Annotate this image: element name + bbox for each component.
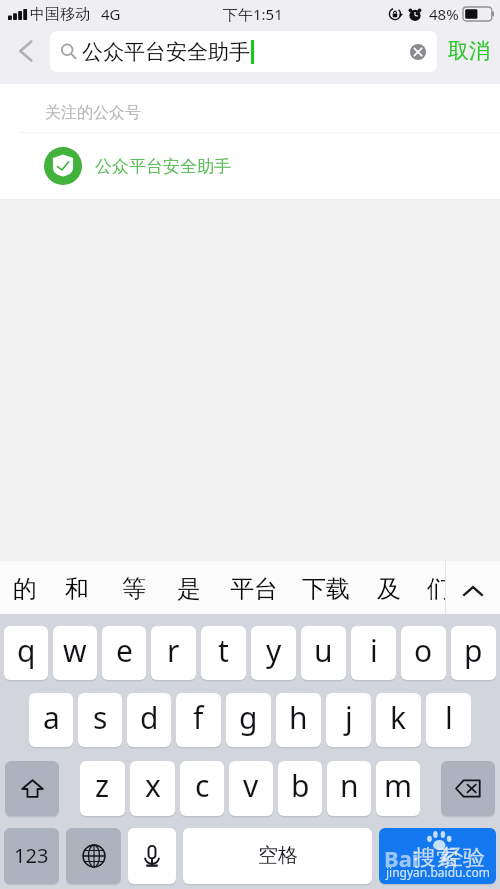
staticText: e <box>116 630 133 671</box>
button[interactable]: e <box>102 626 146 680</box>
staticText: i <box>370 630 378 671</box>
staticText: u <box>314 630 333 671</box>
staticText: 搜索 <box>414 844 458 872</box>
staticText: g <box>239 697 258 738</box>
button[interactable]: s <box>78 693 122 747</box>
staticText: k <box>390 697 407 738</box>
button[interactable]: b <box>278 761 322 816</box>
button[interactable]: 和 <box>65 561 89 614</box>
button[interactable]: h <box>276 693 321 747</box>
staticText: t <box>218 630 229 671</box>
button[interactable]: 们 <box>427 561 445 614</box>
staticText: b <box>291 765 310 806</box>
staticText: 经验 <box>441 844 485 872</box>
staticText: 公众平台安全助手 <box>82 39 250 65</box>
staticText: j <box>345 697 353 738</box>
button[interactable]: x <box>130 761 175 816</box>
button[interactable]: 取消 <box>437 23 500 79</box>
button[interactable]: Switch keyboard language <box>66 828 121 884</box>
button[interactable]: w <box>53 626 97 680</box>
button[interactable]: 等 <box>122 561 146 614</box>
button[interactable]: j <box>326 693 371 747</box>
button[interactable]: t <box>201 626 246 680</box>
staticText: r <box>167 630 180 671</box>
staticText: c <box>195 765 210 806</box>
staticText: 关注的公众号 <box>45 103 141 123</box>
staticText: f <box>193 697 204 738</box>
button[interactable]: Search <box>379 828 496 884</box>
staticText: 下载 <box>302 574 350 604</box>
button[interactable]: 空格 <box>183 828 372 884</box>
button[interactable]: m <box>376 761 420 816</box>
button[interactable]: 平台 <box>230 561 278 614</box>
staticText: 取消 <box>448 38 490 64</box>
button[interactable]: 公众平台安全助手 <box>0 133 500 199</box>
button[interactable]: k <box>376 693 421 747</box>
button[interactable]: Shift <box>5 761 59 816</box>
staticText: x <box>145 765 161 806</box>
staticText: 空格 <box>258 843 298 868</box>
button[interactable]: y <box>251 626 296 680</box>
staticText: a <box>43 697 60 738</box>
staticText: s <box>93 697 108 738</box>
button[interactable]: l <box>426 693 471 747</box>
staticText: jingyan.baidu.com <box>386 864 490 880</box>
button[interactable]: z <box>80 761 125 816</box>
staticText: w <box>63 630 87 671</box>
staticText: d <box>140 697 159 738</box>
button[interactable]: a <box>29 693 73 747</box>
button[interactable]: o <box>401 626 446 680</box>
staticText: p <box>464 630 483 671</box>
staticText: q <box>17 630 36 671</box>
staticText: 等 <box>122 574 146 604</box>
button[interactable]: g <box>226 693 271 747</box>
staticText: o <box>414 630 433 671</box>
staticText: l <box>445 697 453 738</box>
staticText: 123 <box>14 842 49 869</box>
staticText: 及 <box>377 574 401 604</box>
button[interactable]: 及 <box>377 561 401 614</box>
staticText: 中国移动 <box>30 5 90 24</box>
staticText: 的 <box>13 574 37 604</box>
button[interactable]: Voice input <box>128 828 176 884</box>
button[interactable]: v <box>229 761 273 816</box>
staticText: 和 <box>65 574 89 604</box>
button[interactable]: 公众平台安全助手 <box>50 31 437 72</box>
button[interactable]: r <box>151 626 196 680</box>
staticText: v <box>243 765 259 806</box>
staticText: z <box>95 765 110 806</box>
staticText: 下午1:51 <box>223 4 283 24</box>
staticText: 是 <box>177 574 201 604</box>
staticText: y <box>266 630 282 671</box>
staticText: Bai <box>384 843 419 873</box>
button[interactable]: 是 <box>177 561 201 614</box>
staticText: 48% <box>429 4 459 24</box>
button[interactable]: c <box>180 761 224 816</box>
staticText: 4G <box>101 4 121 24</box>
button[interactable]: n <box>327 761 371 816</box>
button[interactable]: 123 <box>4 828 59 884</box>
button[interactable]: More candidates <box>446 561 500 614</box>
staticText: m <box>384 765 413 806</box>
button[interactable]: u <box>301 626 346 680</box>
staticText: h <box>289 697 308 738</box>
button[interactable]: i <box>351 626 396 680</box>
staticText: n <box>340 765 359 806</box>
staticText: 公众平台安全助手 <box>95 156 231 177</box>
staticText: 平台 <box>230 574 278 604</box>
button[interactable]: p <box>451 626 496 680</box>
button[interactable]: Backspace <box>441 761 495 816</box>
button[interactable]: 的 <box>13 561 37 614</box>
button[interactable]: q <box>4 626 48 680</box>
button[interactable]: f <box>176 693 221 747</box>
button[interactable]: Back <box>0 23 50 79</box>
staticText: 们 <box>427 574 445 604</box>
button[interactable]: Clear text <box>407 41 429 63</box>
button[interactable]: d <box>127 693 171 747</box>
button[interactable]: 下载 <box>302 561 350 614</box>
